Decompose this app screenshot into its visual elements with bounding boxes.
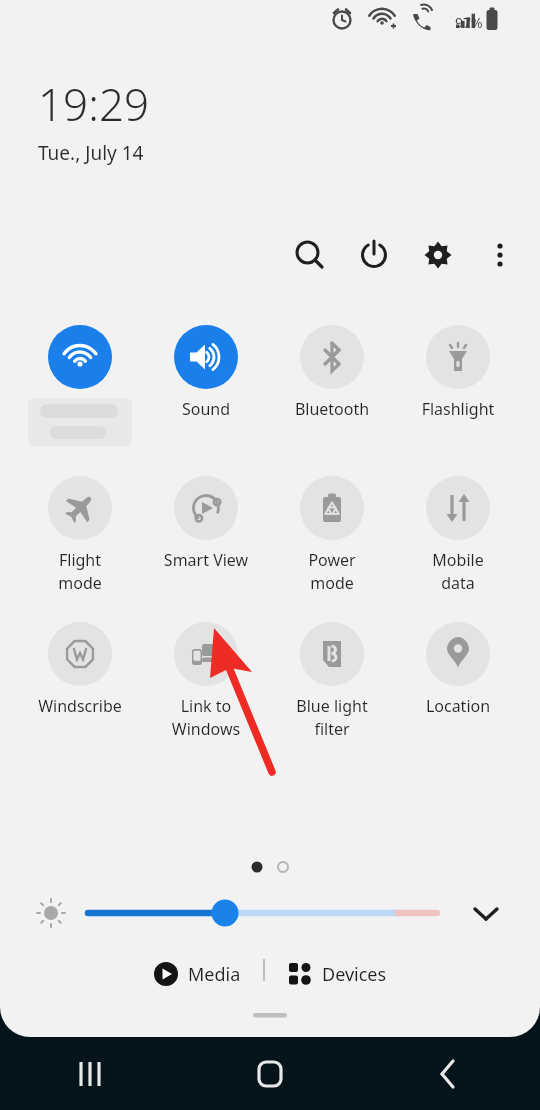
button[interactable]: More options: [476, 231, 524, 279]
button[interactable]: Settings: [414, 231, 462, 279]
button[interactable]: Flashlight: [395, 325, 521, 420]
button[interactable]: Windscribe: [17, 622, 143, 717]
button[interactable]: Blue light filter: [269, 622, 395, 740]
staticText: Flight mode: [19, 549, 141, 594]
button[interactable]: Link to Windows: [143, 622, 269, 740]
button[interactable]: Home: [180, 1037, 360, 1110]
staticText: 19:29: [38, 74, 150, 134]
button[interactable]: Devices: [279, 955, 395, 993]
staticText: Media: [188, 962, 241, 987]
staticText: Smart View: [145, 549, 267, 571]
button[interactable]: Flight mode: [17, 476, 143, 594]
staticText: Link to Windows: [145, 695, 267, 740]
staticText: Windscribe: [19, 695, 141, 717]
staticText: Devices: [322, 962, 387, 987]
button[interactable]: Bluetooth: [269, 325, 395, 420]
button[interactable]: Smart View: [143, 476, 269, 571]
staticText: Mobile data: [397, 549, 519, 594]
button[interactable]: Expand: [466, 890, 514, 938]
button[interactable]: Power mode: [269, 476, 395, 594]
button[interactable]: Back: [360, 1037, 540, 1110]
button[interactable]: Sound: [143, 325, 269, 420]
button[interactable]: [17, 325, 143, 450]
staticText: 97%: [455, 13, 483, 32]
button[interactable]: Power off: [350, 231, 398, 279]
staticText: Flashlight: [397, 398, 519, 420]
staticText: Tue., July 14: [38, 140, 144, 166]
button[interactable]: Media: [145, 955, 249, 993]
staticText: Location: [397, 695, 519, 717]
button[interactable]: Location: [395, 622, 521, 717]
button[interactable]: Brightness: [80, 893, 450, 933]
button[interactable]: Search: [286, 231, 334, 279]
staticText: Sound: [145, 398, 267, 420]
staticText: Bluetooth: [271, 398, 393, 420]
staticText: Blue light filter: [271, 695, 393, 740]
button[interactable]: Recents: [0, 1037, 180, 1110]
button[interactable]: Mobile data: [395, 476, 521, 594]
staticText: Power mode: [271, 549, 393, 594]
